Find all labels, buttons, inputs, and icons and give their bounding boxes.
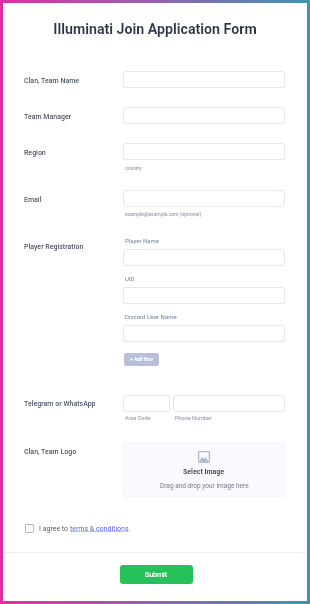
staticText: Email <box>24 196 42 204</box>
staticText: Drag and drop your image here <box>160 482 249 490</box>
button[interactable] <box>123 190 285 207</box>
staticText: example@example.com (optional) <box>125 211 202 217</box>
staticText: . <box>129 525 131 533</box>
button[interactable]: Select image <box>123 442 285 497</box>
staticText: Phone Number <box>175 415 212 421</box>
staticText: Discord User Name <box>125 313 177 320</box>
button[interactable] <box>123 325 285 342</box>
button[interactable] <box>123 287 285 304</box>
staticText: country <box>125 165 142 171</box>
staticText: Illuminati Join Application Form <box>3 21 307 38</box>
button[interactable] <box>123 395 170 412</box>
staticText: Team Manager <box>24 113 72 121</box>
staticText: terms & conditions <box>70 525 129 533</box>
button[interactable]: + Add Row <box>124 353 159 366</box>
staticText: Telegram or WhatsApp <box>24 400 96 408</box>
button[interactable]: Submit <box>120 565 193 584</box>
button[interactable] <box>123 71 285 88</box>
button[interactable]: I agree to <box>25 524 131 533</box>
button[interactable] <box>173 395 285 412</box>
button[interactable] <box>123 249 285 266</box>
staticText: Select Image <box>183 468 225 476</box>
staticText: + Add Row <box>130 357 153 363</box>
staticText: Player Registration <box>24 243 84 251</box>
button[interactable] <box>123 143 285 160</box>
staticText: I agree to <box>39 525 70 533</box>
staticText: Clan, Team Logo <box>24 448 77 456</box>
staticText: Area Code <box>125 415 151 421</box>
staticText: Submit <box>145 571 168 579</box>
button[interactable] <box>123 107 285 124</box>
staticText: Clan, Team Name <box>24 77 80 85</box>
staticText: UID <box>125 275 135 282</box>
staticText: Region <box>24 149 46 157</box>
staticText: Player Name <box>125 237 159 244</box>
